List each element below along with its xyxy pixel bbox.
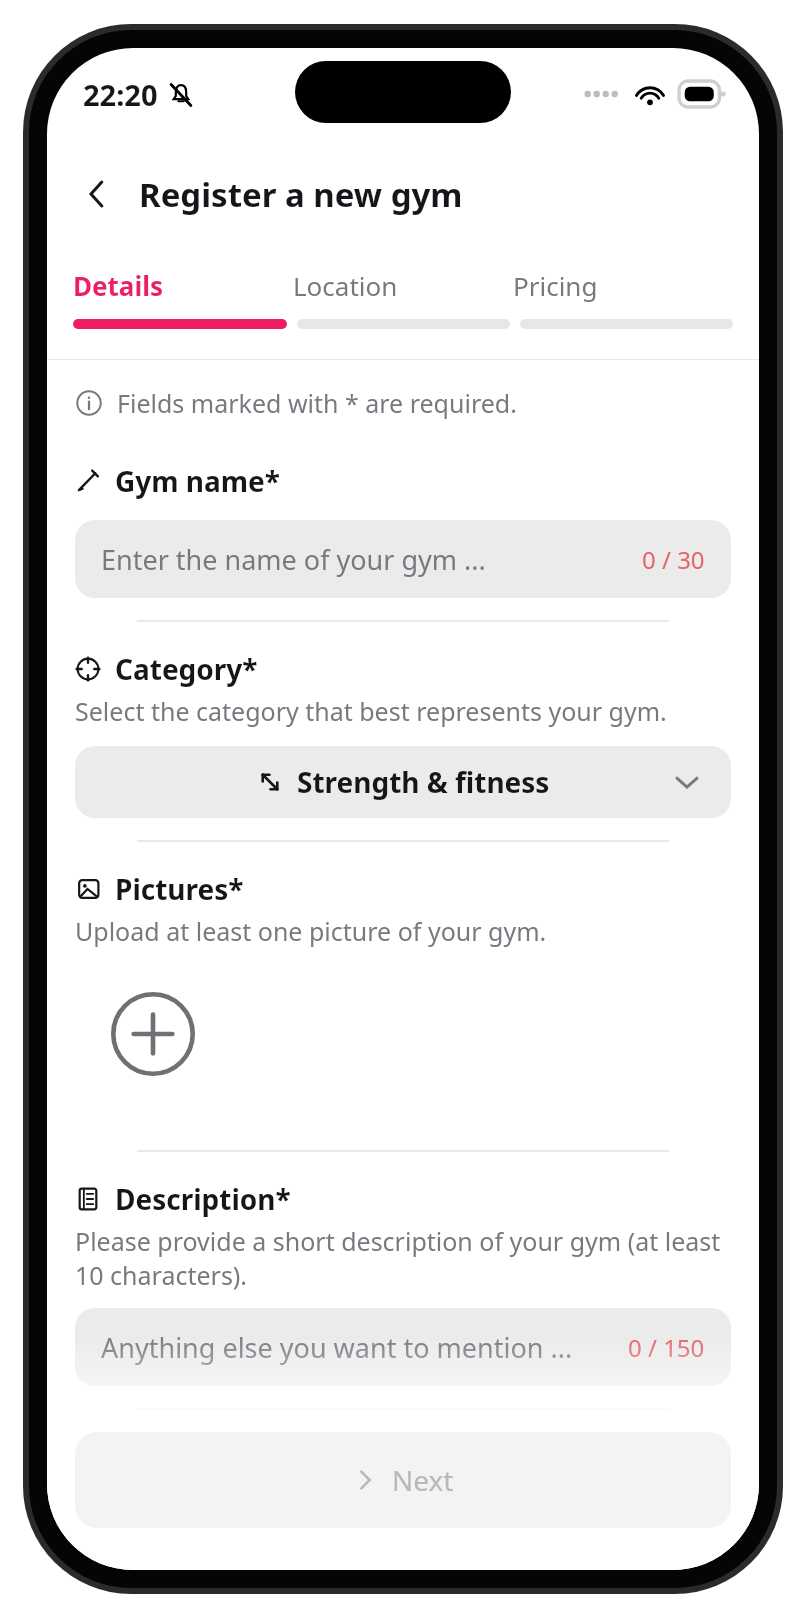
staticText: Upload at least one picture of your gym.	[75, 914, 547, 948]
staticText: Strength & fitness	[297, 763, 550, 801]
staticText: Gym name*	[115, 462, 281, 500]
button[interactable]: Location	[293, 268, 513, 303]
staticText: Details	[73, 268, 163, 303]
button[interactable]: Strength & fitness	[75, 746, 731, 818]
staticText: Next	[392, 1461, 454, 1499]
button[interactable]: Add picture	[111, 992, 195, 1076]
button[interactable]: Anything else you want to mention ...	[75, 1308, 731, 1386]
staticText: 0 / 150	[628, 1331, 705, 1364]
staticText: Category*	[115, 650, 258, 688]
staticText: Select the category that best represents…	[75, 694, 667, 728]
staticText: Register a new gym	[139, 172, 463, 217]
staticText: Please provide a short description of yo…	[75, 1224, 731, 1292]
staticText: 22:20	[83, 75, 158, 114]
staticText: Pictures*	[115, 870, 244, 908]
button[interactable]: Details	[73, 268, 293, 303]
button[interactable]: Next	[75, 1432, 731, 1528]
button[interactable]: Enter the name of your gym ...	[75, 520, 731, 598]
staticText: 0 / 30	[642, 543, 705, 576]
staticText: Fields marked with * are required.	[117, 386, 517, 420]
button[interactable]: Back	[69, 166, 125, 222]
staticText: Description*	[115, 1180, 291, 1218]
staticText: Location	[293, 268, 398, 303]
staticText: Anything else you want to mention ...	[101, 1329, 573, 1366]
button[interactable]: Pricing	[513, 268, 733, 303]
staticText: Pricing	[513, 268, 598, 303]
staticText: Enter the name of your gym ...	[101, 541, 486, 578]
